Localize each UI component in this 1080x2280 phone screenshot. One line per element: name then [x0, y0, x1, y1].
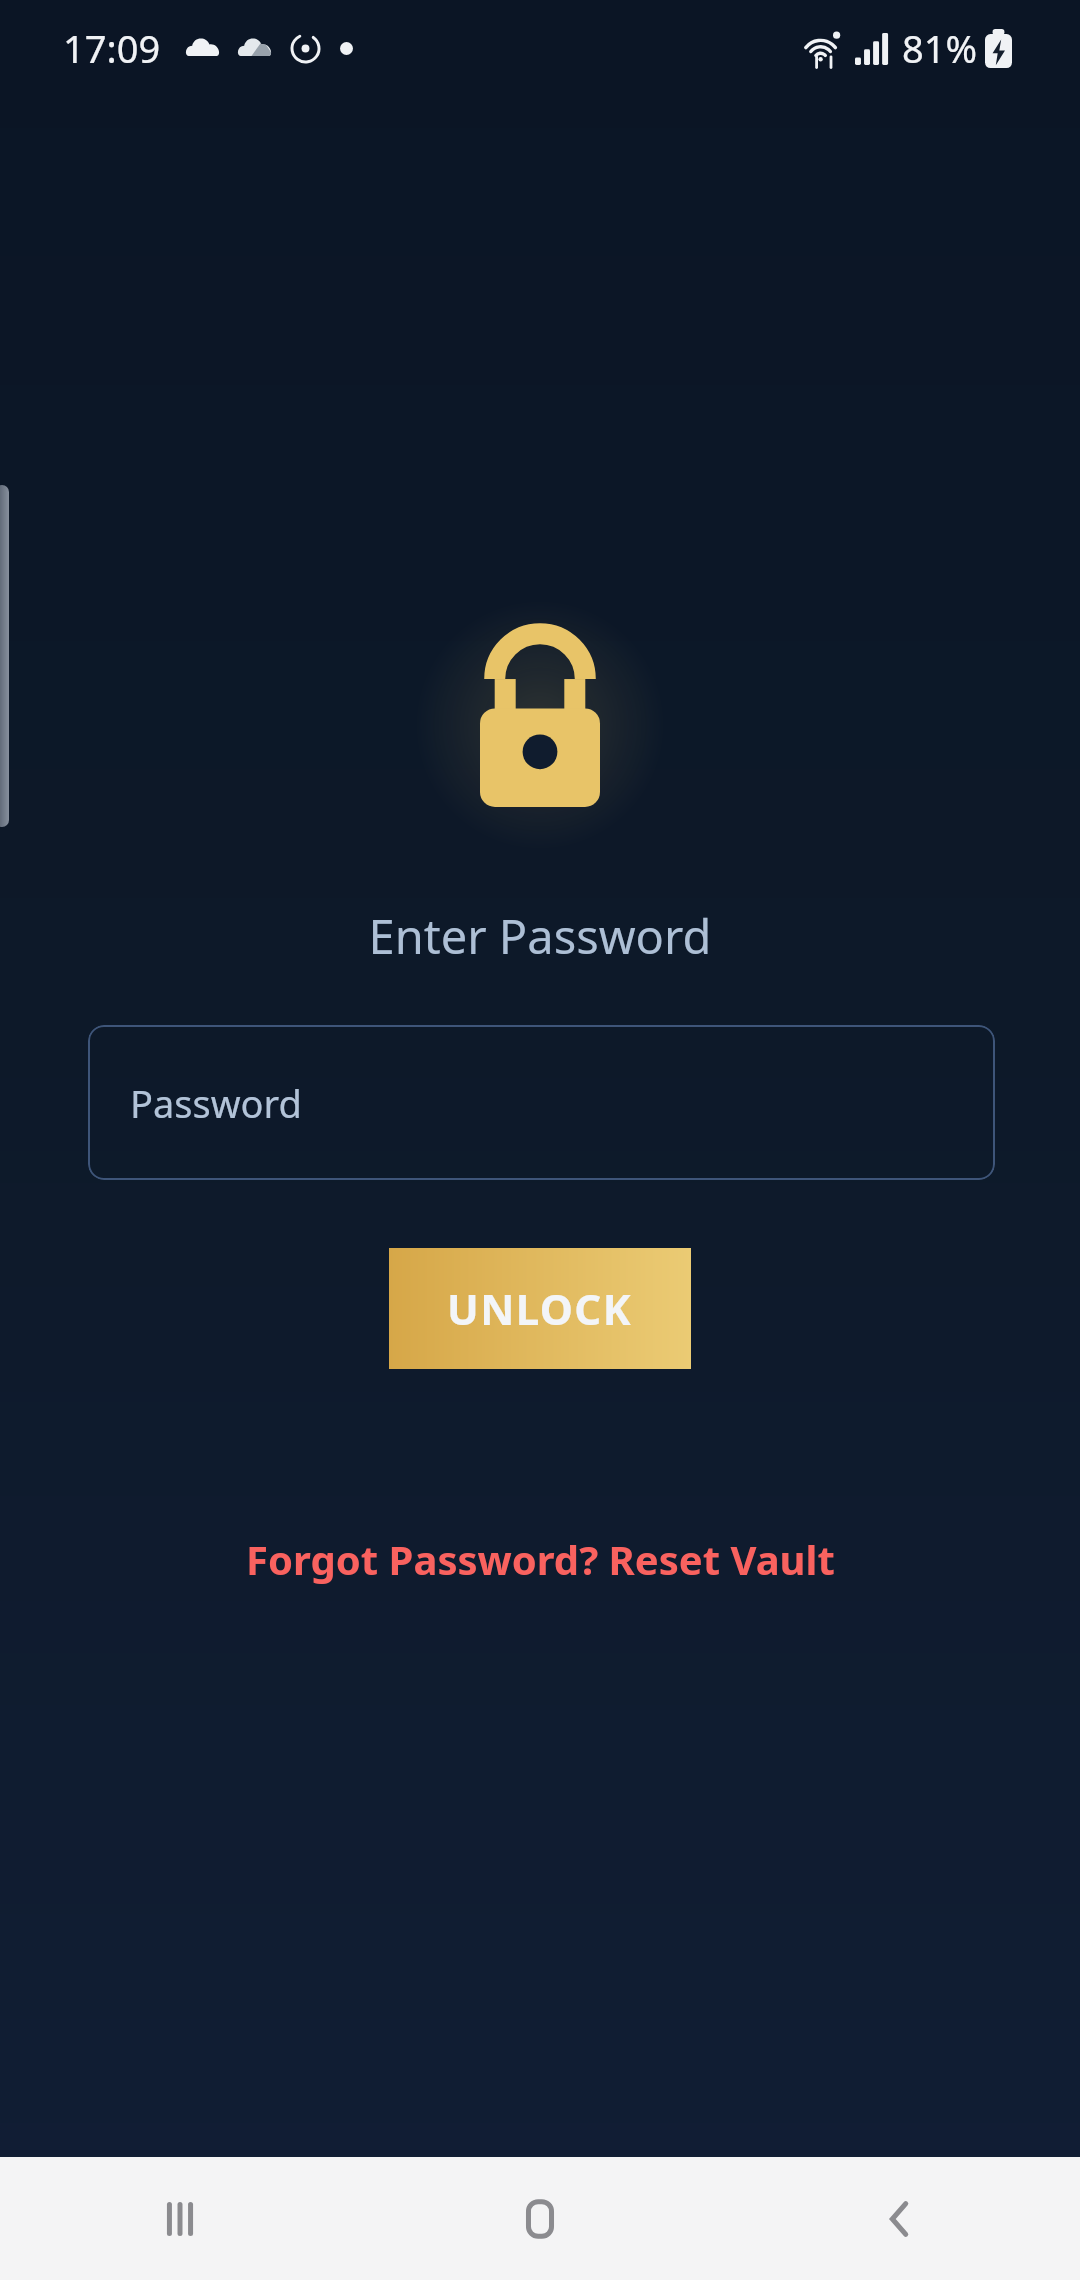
button[interactable]: Forgot Password? Reset Vault [0, 1527, 1080, 1591]
staticText: UNLOCK [447, 1280, 633, 1337]
staticText: Forgot Password? Reset Vault [246, 1532, 835, 1586]
staticText: Enter Password [0, 904, 1080, 968]
button[interactable]: Password [88, 1025, 995, 1180]
button[interactable]: Back [720, 2157, 1080, 2280]
staticText: Password [130, 1077, 302, 1129]
staticText: 17:09 [63, 22, 161, 74]
button[interactable]: Recent apps [0, 2157, 360, 2280]
staticText: 81% [902, 22, 978, 74]
button[interactable]: UNLOCK [389, 1248, 691, 1369]
button[interactable]: Home [360, 2157, 720, 2280]
